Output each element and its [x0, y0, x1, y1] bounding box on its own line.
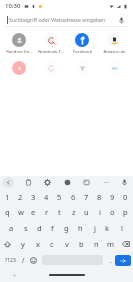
button[interactable]: Notebook T... [36, 31, 66, 57]
button[interactable]: 5 [54, 190, 65, 204]
staticText: u [84, 207, 89, 217]
staticText: q [5, 207, 10, 217]
button[interactable]: t [54, 205, 65, 219]
staticText: g [64, 223, 69, 233]
button[interactable]: c [46, 237, 57, 251]
staticText: y [21, 239, 25, 249]
button[interactable]: 9 [107, 190, 118, 204]
button[interactable]: Voice input [119, 177, 130, 188]
button[interactable]: v [61, 237, 72, 251]
button[interactable]: o [107, 205, 118, 219]
staticText: . [110, 256, 112, 265]
staticText: r [45, 207, 49, 217]
button[interactable]: Expand toolbar [3, 177, 14, 188]
button[interactable]: a [6, 221, 17, 235]
button[interactable]: ?123 [2, 253, 18, 267]
button[interactable]: e [28, 205, 39, 219]
button[interactable]: Settings [42, 177, 53, 188]
button[interactable]: u [81, 205, 92, 219]
button[interactable]: Voice search [116, 15, 126, 25]
staticText: 8 [97, 192, 102, 202]
staticText: Suchbegriff oder Webadresse eingeben [9, 16, 106, 23]
button[interactable] [36, 59, 66, 82]
staticText: p [123, 207, 128, 217]
staticText: 6 [71, 192, 76, 202]
button[interactable]: Suchbegriff oder Webadresse eingeben [4, 12, 129, 27]
staticText: f [51, 223, 54, 233]
button[interactable]: Backspace [120, 236, 132, 252]
staticText: w [18, 207, 24, 217]
button[interactable]: Amazon.de [99, 31, 129, 57]
staticText: 0 [123, 192, 128, 202]
staticText: o [110, 207, 115, 217]
button[interactable]: 4 [41, 190, 52, 204]
button[interactable]: q [2, 205, 13, 219]
button[interactable]: 2 [15, 190, 26, 204]
button[interactable]: d [34, 221, 45, 235]
staticText: 3 [31, 192, 36, 202]
staticText: 9 [110, 192, 115, 202]
staticText: a [9, 223, 14, 233]
button[interactable]: More options [101, 177, 111, 188]
staticText: j [94, 223, 96, 233]
button[interactable]: Facebook [67, 31, 97, 57]
button[interactable]: y [17, 237, 28, 251]
button[interactable]: s [20, 221, 31, 235]
staticText: Random Im... [6, 49, 33, 55]
button[interactable]: Go [115, 255, 131, 266]
button[interactable]: j [89, 221, 100, 235]
staticText: 1 [5, 192, 10, 202]
staticText: h [78, 223, 83, 233]
button[interactable]: g [61, 221, 72, 235]
staticText: d [37, 223, 42, 233]
staticText: v [65, 239, 69, 249]
staticText: ?123 [5, 257, 16, 264]
button[interactable] [4, 59, 34, 82]
staticText: b [79, 239, 84, 249]
button[interactable]: Random Im... [4, 31, 34, 57]
button[interactable]: x [32, 237, 43, 251]
staticText: i [99, 207, 101, 217]
staticText: s [24, 223, 28, 233]
button[interactable]: r [41, 205, 52, 219]
button[interactable]: / [18, 253, 28, 267]
button[interactable]: Stickers [62, 177, 73, 188]
button[interactable] [67, 59, 97, 82]
button[interactable]: GIF [81, 177, 92, 188]
button[interactable]: i [94, 205, 105, 219]
staticText: m [107, 239, 115, 249]
button[interactable]: 3 [28, 190, 39, 204]
button[interactable]: m [105, 237, 116, 251]
button[interactable] [99, 59, 129, 82]
button[interactable]: 6 [68, 190, 79, 204]
staticText: z [72, 207, 76, 217]
button[interactable]: b [76, 237, 87, 251]
staticText: n [94, 239, 99, 249]
button[interactable]: 0 [120, 190, 131, 204]
button[interactable]: k [102, 221, 113, 235]
button[interactable]: w [15, 205, 26, 219]
button[interactable]: 7 [81, 190, 92, 204]
staticText: 7 [84, 192, 89, 202]
staticText: x [36, 239, 40, 249]
button[interactable]: Emoji [28, 253, 39, 267]
staticText: t [58, 207, 61, 217]
button[interactable]: f [47, 221, 58, 235]
button[interactable]: Shift [1, 236, 13, 252]
button[interactable]: . [106, 253, 115, 267]
button[interactable]: p [120, 205, 131, 219]
staticText: 2 [18, 192, 23, 202]
button[interactable]: 1 [2, 190, 13, 204]
staticText: Amazon.de [103, 49, 126, 55]
button[interactable]: z [68, 205, 79, 219]
button[interactable]: h [75, 221, 86, 235]
button[interactable]: Clipboard [23, 177, 34, 188]
staticText: 10:30 [5, 2, 21, 10]
button[interactable]: 8 [94, 190, 105, 204]
button[interactable]: n [91, 237, 102, 251]
button[interactable]: l [116, 221, 127, 235]
staticText: c [50, 239, 54, 249]
staticText: Facebook [73, 49, 92, 55]
staticText: / [22, 256, 25, 265]
